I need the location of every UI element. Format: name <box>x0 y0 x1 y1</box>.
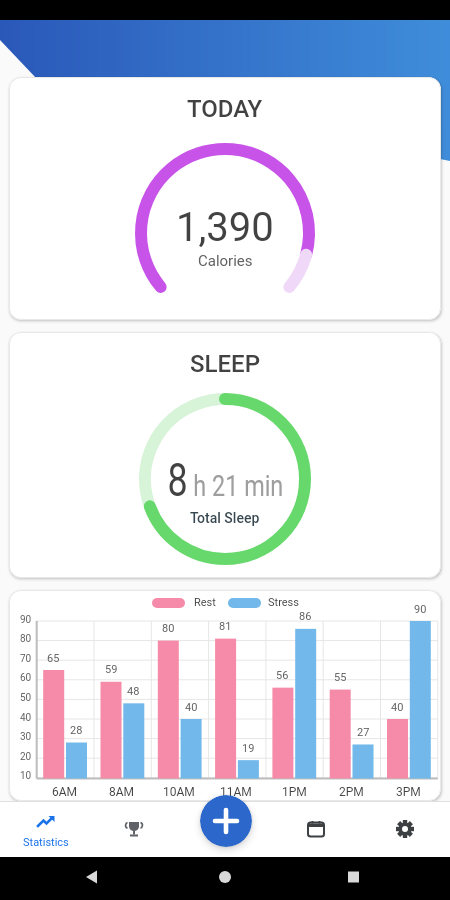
staticText: 27 <box>357 726 370 739</box>
staticText: Rest <box>194 596 216 609</box>
staticText: 50 <box>20 692 32 704</box>
staticText: 20 <box>20 751 32 763</box>
staticText: 80 <box>20 633 32 645</box>
staticText: 81 <box>219 620 232 633</box>
button[interactable] <box>200 795 252 847</box>
staticText: 1PM <box>282 785 307 799</box>
staticText: 11AM <box>220 785 252 799</box>
staticText: 80 <box>162 622 175 635</box>
button[interactable] <box>98 801 170 857</box>
button[interactable]: Rest <box>9 590 441 801</box>
staticText: 19 <box>242 742 255 755</box>
staticText: 8AM <box>109 785 135 799</box>
staticText: 59 <box>105 663 118 676</box>
staticText: Calories <box>198 252 253 270</box>
staticText: 6AM <box>52 785 78 799</box>
staticText: 2PM <box>339 785 364 799</box>
staticText: 1,390 <box>176 204 274 251</box>
staticText: 30 <box>20 731 32 743</box>
staticText: 70 <box>20 653 32 665</box>
staticText: SLEEP <box>190 350 260 378</box>
staticText: 55 <box>334 671 347 684</box>
staticText: 40 <box>185 701 198 714</box>
button[interactable] <box>280 801 352 857</box>
staticText: Stress <box>268 596 299 609</box>
button[interactable] <box>369 801 441 857</box>
staticText: 8 h 21 min <box>167 453 284 507</box>
button[interactable]: Statistics <box>10 801 82 857</box>
staticText: 10AM <box>163 785 195 799</box>
staticText: 56 <box>276 669 289 682</box>
button[interactable]: SLEEP <box>9 332 441 578</box>
staticText: 86 <box>299 610 312 623</box>
staticText: Statistics <box>23 836 69 849</box>
button[interactable]: TODAY <box>9 77 441 320</box>
staticText: 65 <box>47 652 60 665</box>
staticText: 60 <box>20 672 32 684</box>
staticText: 28 <box>70 724 83 737</box>
staticText: 40 <box>391 701 404 714</box>
staticText: Total Sleep <box>190 510 260 526</box>
staticText: 40 <box>20 712 32 724</box>
staticText: 3PM <box>396 785 421 799</box>
staticText: 48 <box>127 685 140 698</box>
staticText: TODAY <box>187 95 263 123</box>
staticText: 90 <box>414 603 427 616</box>
staticText: 90 <box>20 614 32 626</box>
staticText: 10 <box>20 770 32 782</box>
